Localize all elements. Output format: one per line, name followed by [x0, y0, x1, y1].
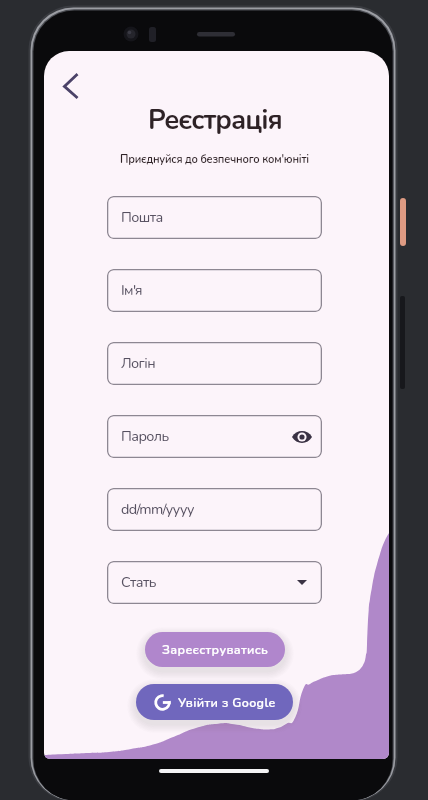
- staticText: Реєстрація: [148, 102, 282, 139]
- staticText: Пароль: [121, 427, 169, 447]
- staticText: Пошта: [121, 208, 163, 228]
- button[interactable]: Пароль: [107, 415, 322, 458]
- staticText: Зареєструватись: [162, 641, 269, 658]
- button[interactable]: Пошта: [107, 196, 322, 239]
- button[interactable]: Back: [52, 64, 96, 108]
- button[interactable]: Зареєструватись: [145, 632, 285, 667]
- button[interactable]: Увійти з Google: [136, 684, 293, 720]
- button[interactable]: dd/mm/yyyy: [107, 488, 322, 531]
- staticText: Приєднуйся до безпечного ком'юніті: [120, 152, 309, 167]
- staticText: Ім'я: [121, 281, 142, 301]
- staticText: Логін: [121, 354, 155, 374]
- staticText: dd/mm/yyyy: [121, 500, 194, 520]
- button[interactable]: Стать: [107, 561, 322, 604]
- button[interactable]: Логін: [107, 342, 322, 385]
- staticText: Увійти з Google: [178, 694, 276, 711]
- staticText: Стать: [121, 573, 156, 593]
- button[interactable]: Ім'я: [107, 269, 322, 312]
